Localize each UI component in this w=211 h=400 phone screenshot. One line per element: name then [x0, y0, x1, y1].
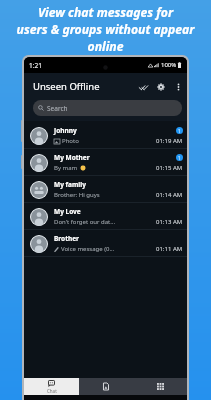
staticText: 1 — [178, 155, 181, 161]
staticText: 01:13 AM — [156, 218, 183, 226]
button[interactable]: Mark all read — [134, 78, 152, 96]
staticText: Photo — [62, 137, 79, 145]
staticText: Brother: Hi guys — [54, 191, 100, 199]
staticText: View chat messages for users & groups wi… — [0, 4, 211, 55]
staticText: My family — [54, 180, 86, 189]
button[interactable]: Johnny — [24, 122, 187, 149]
button[interactable]: Search — [33, 100, 182, 116]
button[interactable]: More options — [170, 79, 186, 95]
staticText: 01:14 AM — [156, 191, 183, 199]
button[interactable]: Settings — [152, 78, 170, 96]
button[interactable]: Media — [79, 378, 133, 395]
staticText: 01:15 AM — [156, 164, 183, 172]
button[interactable]: Brother — [24, 230, 187, 257]
staticText: 1:21 — [29, 61, 42, 70]
staticText: Don't forget our dat... — [54, 218, 116, 226]
staticText: Chat — [47, 388, 57, 394]
button[interactable]: My family — [24, 176, 187, 203]
staticText: Search — [47, 104, 68, 113]
staticText: 01:11 AM — [156, 245, 183, 253]
staticText: Johnny — [54, 126, 77, 135]
staticText: 1 — [178, 128, 181, 134]
button[interactable]: Chat — [24, 378, 79, 395]
staticText: Voice message (0... — [61, 245, 115, 253]
button[interactable]: Apps — [133, 378, 187, 395]
staticText: Brother — [54, 234, 79, 243]
button[interactable]: My Love — [24, 203, 187, 230]
staticText: My Mother — [54, 153, 90, 162]
staticText: By mam — [54, 164, 78, 172]
button[interactable]: My Mother — [24, 149, 187, 176]
staticText: My Love — [54, 207, 81, 216]
staticText: Unseen Offline — [33, 80, 100, 93]
staticText: 01:19 AM — [156, 137, 183, 145]
staticText: 100% — [161, 61, 177, 69]
